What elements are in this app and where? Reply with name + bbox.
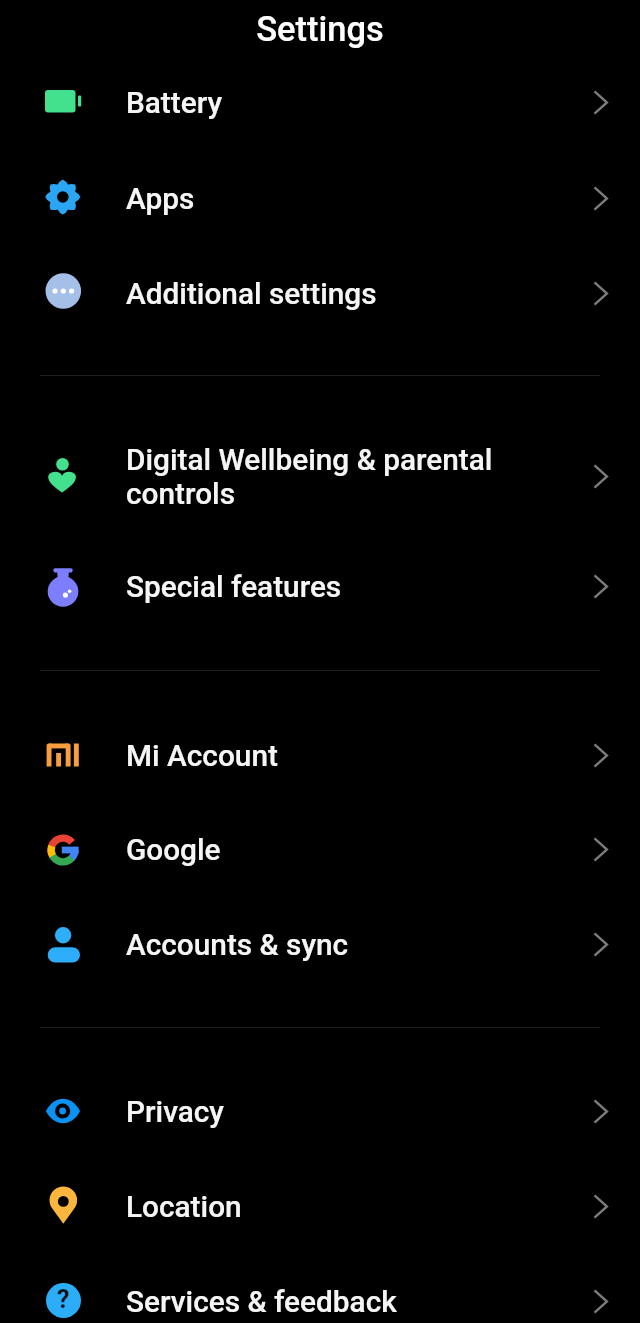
staticText: Battery xyxy=(126,85,566,120)
button[interactable]: Special features xyxy=(0,540,640,632)
other: Accounts and sync xyxy=(43,924,83,964)
staticText: Privacy xyxy=(126,1094,566,1129)
other: Google xyxy=(43,830,83,870)
button[interactable]: Apps xyxy=(0,152,640,244)
staticText: ? xyxy=(57,1285,70,1314)
staticText: Location xyxy=(126,1189,566,1224)
staticText: Services & feedback xyxy=(126,1284,566,1319)
button[interactable]: Digital Wellbeing and parental controls xyxy=(0,430,640,522)
button[interactable]: Accounts and sync xyxy=(0,898,640,990)
other: Additional settings xyxy=(43,271,83,311)
staticText: Special features xyxy=(126,569,566,604)
button[interactable]: Services and feedback xyxy=(0,1255,640,1323)
other: Services and feedback xyxy=(43,1280,83,1320)
button[interactable]: Google xyxy=(0,803,640,895)
button[interactable]: Privacy xyxy=(0,1065,640,1157)
other: Digital Wellbeing and parental controls xyxy=(43,455,83,495)
staticText: Accounts & sync xyxy=(126,927,566,962)
button[interactable]: Battery xyxy=(0,56,640,148)
staticText: Google xyxy=(126,832,566,867)
other: Battery xyxy=(43,81,83,121)
other: Special features xyxy=(43,567,83,607)
other: Apps xyxy=(43,177,83,217)
staticText: Apps xyxy=(126,181,566,216)
staticText: Mi Account xyxy=(126,738,566,773)
other: Mi Account xyxy=(43,735,83,775)
other: Privacy xyxy=(43,1091,83,1131)
button[interactable]: Mi Account xyxy=(0,709,640,801)
button[interactable]: Location xyxy=(0,1160,640,1252)
staticText: Settings xyxy=(256,9,384,49)
staticText: Digital Wellbeing & parental controls xyxy=(126,442,566,511)
staticText: Additional settings xyxy=(126,276,566,311)
other: Location xyxy=(43,1186,83,1226)
button[interactable]: Additional settings xyxy=(0,247,640,339)
